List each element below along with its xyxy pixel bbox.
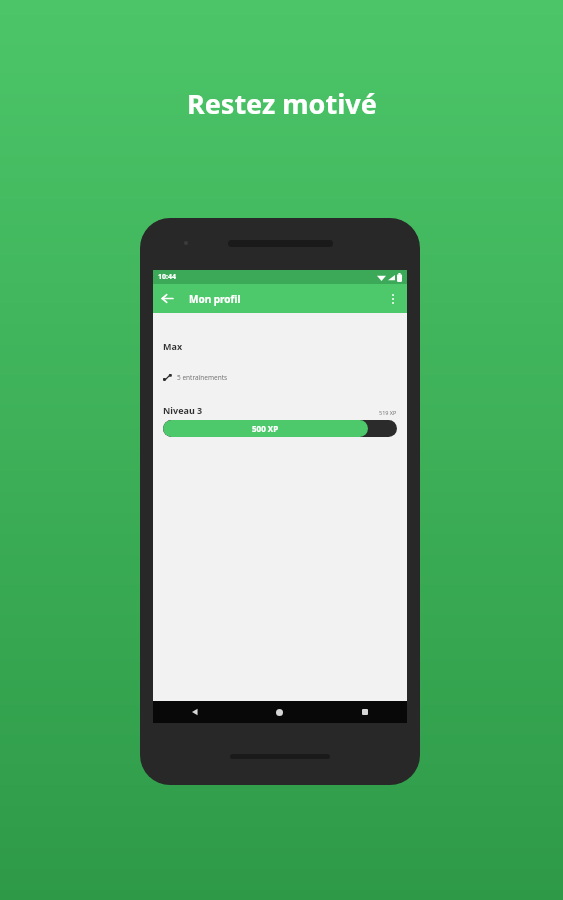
button[interactable]: Back: [153, 701, 237, 723]
staticText: 5 entraînements: [177, 373, 228, 382]
staticText: Max: [163, 340, 183, 352]
staticText: Restez motivé: [187, 85, 377, 122]
staticText: Mon profil: [189, 292, 241, 306]
button[interactable]: Home: [237, 701, 322, 723]
staticText: 500 XP: [252, 423, 279, 434]
staticText: Niveau 3: [163, 404, 203, 416]
button[interactable]: Back: [153, 284, 182, 313]
button[interactable]: More options: [378, 284, 407, 313]
button[interactable]: 500 XP: [163, 420, 397, 437]
button[interactable]: Recent apps: [322, 701, 407, 723]
staticText: 10:44: [158, 272, 176, 282]
staticText: 519 XP: [379, 409, 397, 416]
